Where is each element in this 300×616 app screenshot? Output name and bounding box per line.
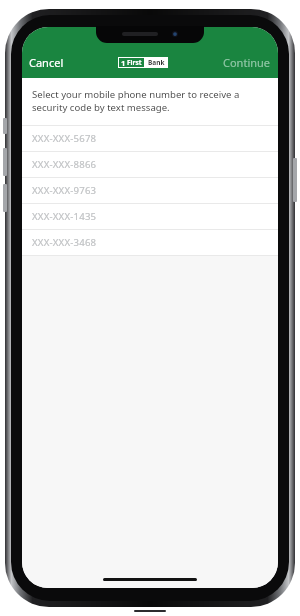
staticText: XXX-XXX-1435 <box>32 210 97 223</box>
button[interactable]: Continue <box>216 51 278 74</box>
staticText: Cancel <box>29 55 64 70</box>
staticText: XXX-XXX-8866 <box>32 158 97 171</box>
staticText: 1 <box>121 58 126 67</box>
button[interactable]: First Bank <box>118 57 168 68</box>
button[interactable]: XXX-XXX-1435 <box>22 204 278 229</box>
staticText: Bank <box>148 58 165 67</box>
staticText: XXX-XXX-5678 <box>32 132 97 145</box>
button[interactable]: XXX-XXX-3468 <box>22 230 278 255</box>
button[interactable]: Cancel <box>22 51 71 74</box>
staticText: XXX-XXX-9763 <box>32 184 97 197</box>
staticText: First <box>127 58 142 67</box>
staticText: XXX-XXX-3468 <box>32 236 97 249</box>
button[interactable]: XXX-XXX-9763 <box>22 178 278 203</box>
button[interactable]: XXX-XXX-5678 <box>22 126 278 151</box>
staticText: Select your mobile phone number to recei… <box>32 88 266 114</box>
button[interactable]: XXX-XXX-8866 <box>22 152 278 177</box>
staticText: Continue <box>223 55 271 70</box>
